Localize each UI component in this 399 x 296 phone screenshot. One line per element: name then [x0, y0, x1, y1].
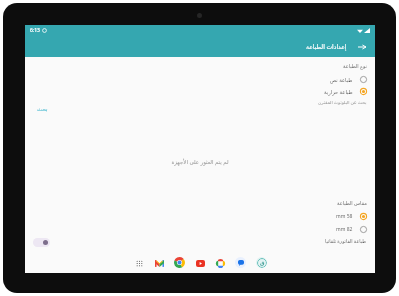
staticText: مقاس الطباعة	[337, 200, 367, 207]
staticText: mm 58	[336, 213, 353, 220]
staticText: mm 82	[336, 226, 353, 233]
button[interactable]: طباعة الفاتورة تلقائيا	[325, 238, 367, 245]
button[interactable]: طباعة نص	[330, 76, 367, 83]
staticText: ق	[260, 260, 265, 266]
button[interactable]: طباعة حرارية	[324, 88, 367, 95]
staticText: طباعة حرارية	[324, 88, 353, 95]
button[interactable]: Gmail	[153, 257, 165, 269]
staticText: نوع الطباعة	[343, 63, 367, 70]
staticText: إعدادات الطباعة	[306, 43, 347, 51]
button[interactable]: mm 82	[336, 226, 367, 233]
staticText: لم يتم العثور على الأجهزة	[171, 158, 229, 165]
button[interactable]: YouTube	[194, 257, 206, 269]
button[interactable]: Toggle	[33, 238, 50, 247]
button[interactable]: Messages	[234, 256, 247, 269]
staticText: 6:13	[30, 27, 40, 34]
button[interactable]: بحث	[37, 106, 48, 112]
button[interactable]: بحث عن البلوتوث المقترن	[318, 99, 367, 105]
button[interactable]: Back	[355, 40, 369, 54]
button[interactable]: mm 58	[336, 213, 367, 220]
staticText: طباعة نص	[330, 76, 353, 83]
button[interactable]: Photos	[214, 257, 226, 269]
button[interactable]: Chrome	[173, 256, 186, 269]
button[interactable]: All apps	[133, 257, 145, 269]
button[interactable]: App	[255, 256, 268, 269]
